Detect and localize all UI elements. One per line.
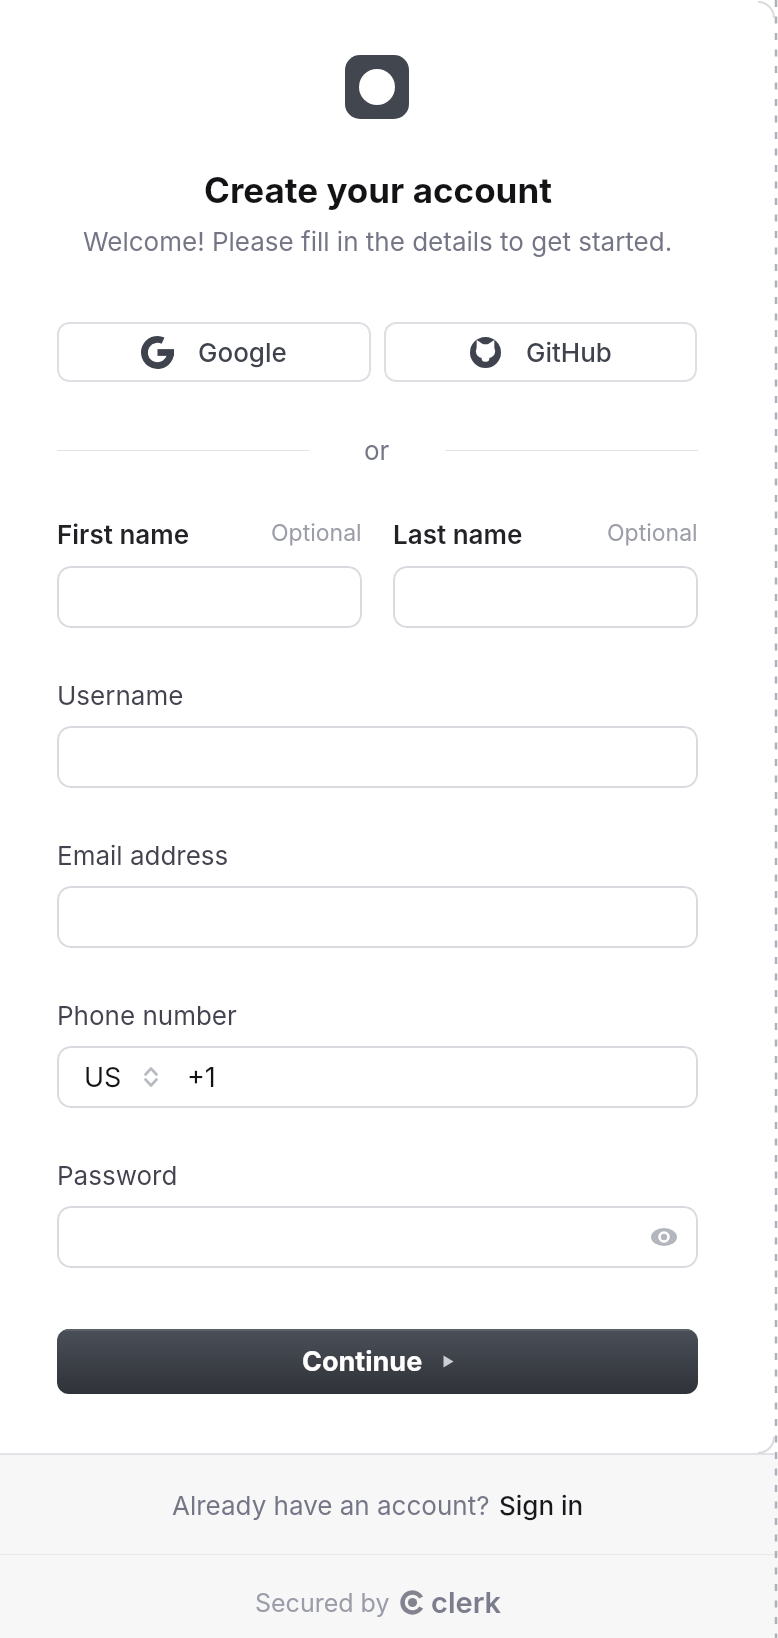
staticText: Phone number xyxy=(57,1000,237,1028)
button[interactable]: Continue xyxy=(57,1329,698,1394)
staticText: Already have an account? xyxy=(172,1490,490,1521)
staticText: +1 xyxy=(187,1061,216,1094)
staticText: Google xyxy=(198,337,287,368)
staticText: Optional xyxy=(271,519,362,547)
staticText: US xyxy=(84,1061,122,1094)
staticText: GitHub xyxy=(526,337,612,368)
button[interactable]: Google xyxy=(57,322,371,382)
button[interactable] xyxy=(57,726,698,788)
staticText: Sign in xyxy=(499,1490,584,1521)
staticText: Username xyxy=(57,680,184,708)
button[interactable] xyxy=(57,1206,698,1268)
staticText: Optional xyxy=(607,519,698,547)
button[interactable] xyxy=(57,566,362,628)
staticText: Create your account xyxy=(204,169,553,211)
button[interactable]: Already have an account? xyxy=(172,1490,584,1521)
staticText: Secured by xyxy=(255,1588,390,1618)
staticText: or xyxy=(364,435,390,466)
staticText: First name xyxy=(57,519,190,547)
staticText: clerk xyxy=(431,1585,502,1620)
button[interactable]: US xyxy=(57,1046,698,1108)
staticText: Password xyxy=(57,1160,178,1188)
staticText: Welcome! Please fill in the details to g… xyxy=(83,226,673,257)
staticText: Last name xyxy=(393,519,523,547)
staticText: Email address xyxy=(57,840,229,868)
button[interactable] xyxy=(393,566,698,628)
button[interactable]: GitHub xyxy=(384,322,697,382)
staticText: Continue xyxy=(302,1345,423,1378)
button[interactable] xyxy=(57,886,698,948)
